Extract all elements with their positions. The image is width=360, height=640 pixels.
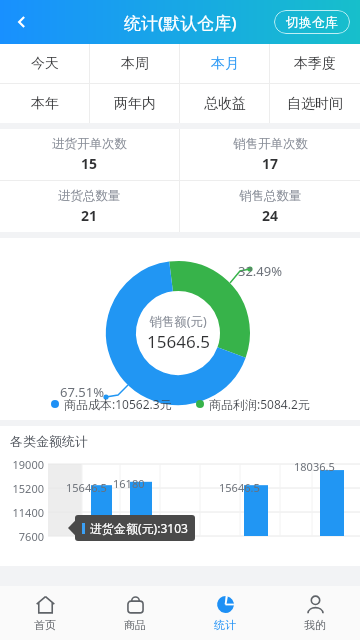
staticText: 15646.5 bbox=[147, 330, 210, 353]
staticText: 进货金额(元):3103 bbox=[90, 520, 188, 536]
button[interactable]: 进货总数量 bbox=[0, 181, 179, 232]
button[interactable]: 首页 bbox=[0, 586, 90, 640]
staticText: 进货开单次数 bbox=[52, 136, 127, 152]
staticText: 本年 bbox=[31, 95, 59, 113]
button[interactable]: 两年内 bbox=[90, 84, 180, 123]
staticText: 切换仓库 bbox=[286, 14, 338, 30]
button[interactable]: 本季度 bbox=[270, 44, 360, 83]
staticText: 统计(默认仓库) bbox=[124, 11, 237, 34]
button[interactable]: 商品成本:10562.3元 bbox=[51, 396, 172, 412]
button[interactable]: 切换仓库 bbox=[274, 10, 350, 34]
staticText: 18036.5 bbox=[294, 459, 335, 474]
button[interactable]: 进货开单次数 bbox=[0, 129, 179, 180]
staticText: 17 bbox=[262, 154, 279, 173]
button[interactable]: 销售开单次数 bbox=[180, 129, 360, 180]
button[interactable]: 我的 bbox=[270, 586, 360, 640]
staticText: 统计 bbox=[214, 618, 236, 632]
staticText: 15 bbox=[81, 154, 98, 173]
staticText: 首页 bbox=[34, 618, 56, 632]
staticText: 商品 bbox=[124, 618, 146, 632]
staticText: 19000 bbox=[0, 457, 44, 472]
button[interactable]: 统计 bbox=[180, 586, 270, 640]
button[interactable]: 今天 bbox=[0, 44, 90, 83]
staticText: 销售开单次数 bbox=[233, 136, 308, 152]
button[interactable]: 本周 bbox=[90, 44, 180, 83]
staticText: 32.49% bbox=[238, 262, 283, 280]
button[interactable]: 本年 bbox=[0, 84, 90, 123]
button[interactable]: 自选时间 bbox=[270, 84, 360, 123]
staticText: 我的 bbox=[304, 618, 326, 632]
staticText: 本季度 bbox=[294, 55, 336, 73]
staticText: 16180 bbox=[113, 476, 145, 491]
staticText: 进货总数量 bbox=[58, 188, 121, 204]
staticText: 15200 bbox=[0, 481, 44, 496]
staticText: 商品利润:5084.2元 bbox=[209, 396, 310, 412]
staticText: 自选时间 bbox=[287, 95, 343, 113]
staticText: 11400 bbox=[0, 505, 44, 520]
staticText: 7600 bbox=[0, 529, 44, 544]
staticText: 销售额(元) bbox=[149, 313, 207, 330]
staticText: 本周 bbox=[121, 55, 149, 73]
staticText: 本月 bbox=[211, 55, 239, 73]
button[interactable]: 本月 bbox=[180, 44, 270, 83]
staticText: 两年内 bbox=[114, 95, 156, 113]
button[interactable]: 总收益 bbox=[180, 84, 270, 123]
staticText: 67.51% bbox=[60, 383, 105, 401]
staticText: 总收益 bbox=[204, 95, 246, 113]
staticText: 15646.5 bbox=[66, 480, 107, 495]
button[interactable]: 商品利润:5084.2元 bbox=[196, 396, 310, 412]
staticText: 销售总数量 bbox=[239, 188, 302, 204]
staticText: 15646.5 bbox=[219, 480, 260, 495]
staticText: 今天 bbox=[31, 55, 59, 73]
staticText: 21 bbox=[81, 206, 98, 225]
button[interactable]: 销售总数量 bbox=[180, 181, 360, 232]
button[interactable]: 进货金额(元):3103 bbox=[75, 515, 195, 541]
button[interactable]: Back bbox=[0, 0, 44, 44]
button[interactable]: 商品 bbox=[90, 586, 180, 640]
staticText: 商品成本:10562.3元 bbox=[64, 396, 172, 412]
staticText: 24 bbox=[262, 206, 279, 225]
staticText: 各类金额统计 bbox=[10, 433, 88, 449]
